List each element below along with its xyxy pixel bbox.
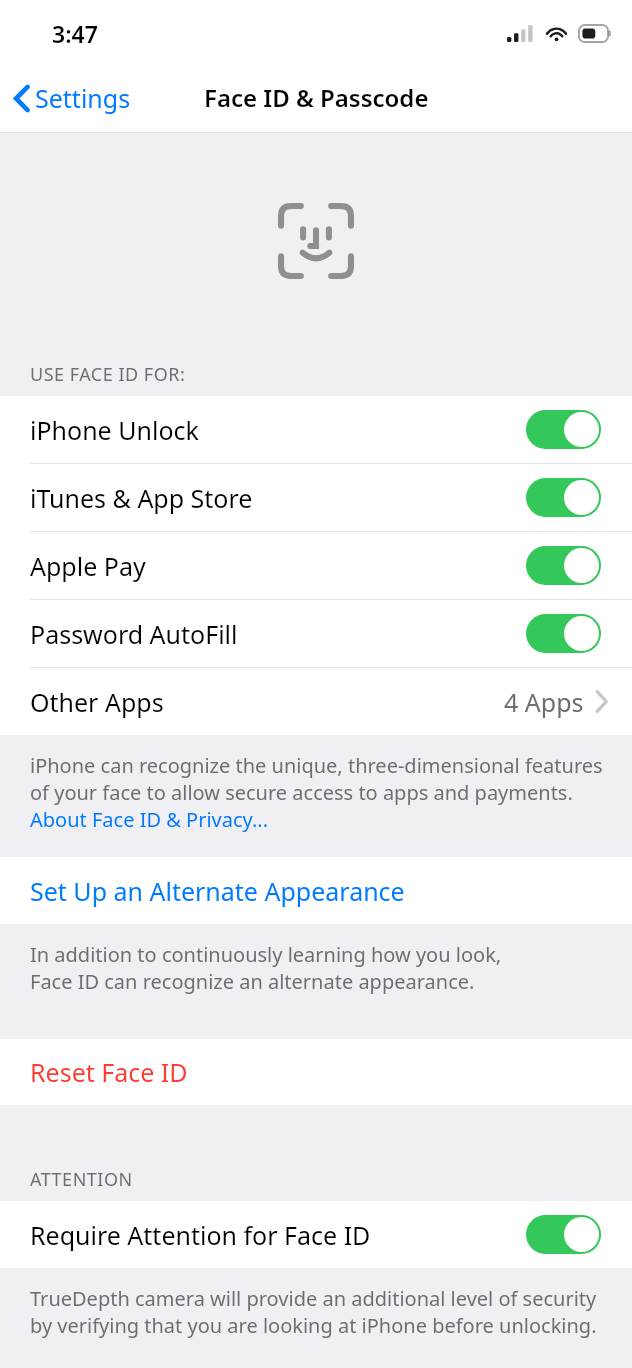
staticText: Set Up an Alternate Appearance [30,874,405,908]
staticText: Password AutoFill [30,617,526,651]
staticText: Apple Pay [30,549,526,583]
staticText: Settings [35,81,131,115]
button[interactable]: Set Up an Alternate Appearance [0,857,632,924]
staticText: USE FACE ID FOR: [30,362,186,387]
staticText: ATTENTION [30,1167,133,1192]
button[interactable]: Toggle, on [526,546,601,585]
button[interactable]: Password AutoFill [0,600,632,667]
button[interactable]: Other Apps [0,668,632,735]
staticText: 3:47 [52,18,98,49]
button[interactable]: iPhone Unlock [0,396,632,463]
staticText: of your face to allow secure access to a… [30,779,573,806]
staticText: iPhone Unlock [30,413,526,447]
staticText: iTunes & App Store [30,481,526,515]
button[interactable]: Toggle, on [526,1215,601,1254]
staticText: Other Apps [30,685,504,719]
button[interactable]: Reset Face ID [0,1039,632,1105]
button[interactable]: Toggle, on [526,478,601,517]
staticText: Face ID & Passcode [204,81,429,114]
staticText: About Face ID & Privacy... [30,806,269,833]
staticText: by verifying that you are looking at iPh… [30,1312,597,1338]
staticText: Face ID can recognize an alternate appea… [30,968,475,995]
button[interactable]: Apple Pay [0,532,632,599]
button[interactable]: iTunes & App Store [0,464,632,531]
button[interactable]: Toggle, on [526,410,601,449]
staticText: In addition to continuously learning how… [30,941,502,968]
staticText: Reset Face ID [30,1055,188,1089]
button[interactable]: Toggle, on [526,614,601,653]
staticText: iPhone can recognize the unique, three-d… [30,752,603,779]
staticText: TrueDepth camera will provide an additio… [30,1285,597,1312]
button[interactable]: Require Attention for Face ID [0,1201,632,1268]
staticText: 4 Apps [504,685,584,719]
staticText: Require Attention for Face ID [30,1218,526,1252]
button[interactable]: Settings [0,71,145,125]
